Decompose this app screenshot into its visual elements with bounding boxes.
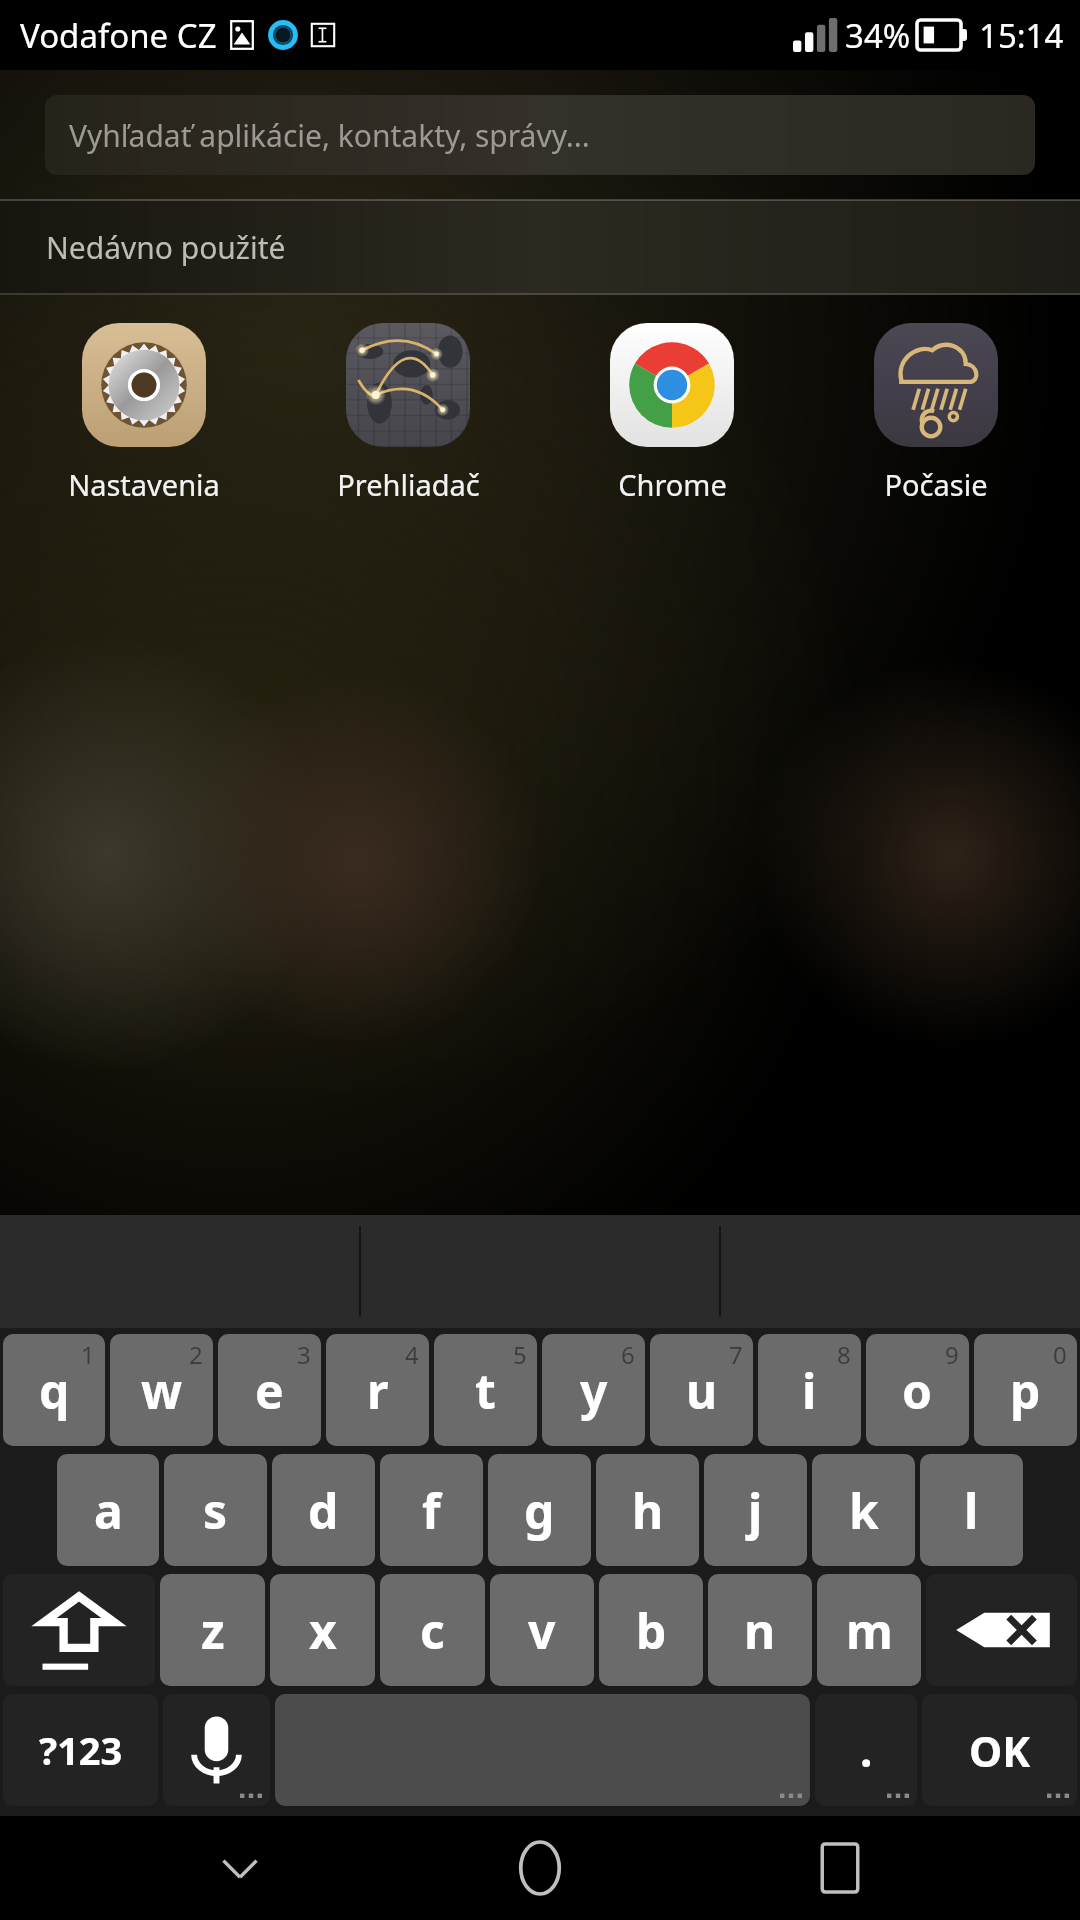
button[interactable]: y	[542, 1334, 645, 1446]
staticText: .	[860, 1720, 873, 1780]
staticText: Prehliadač	[337, 465, 480, 504]
staticText: Počasie	[884, 465, 988, 504]
staticText: y	[580, 1358, 608, 1423]
staticText: t	[475, 1358, 496, 1423]
button[interactable]: Home	[480, 1816, 600, 1920]
staticText: 9	[945, 1338, 959, 1371]
button[interactable]: u	[650, 1334, 753, 1446]
staticText: s	[203, 1478, 228, 1543]
staticText: z	[201, 1598, 225, 1663]
button[interactable]: c	[380, 1574, 485, 1686]
staticText: q	[39, 1358, 70, 1423]
staticText: 4	[405, 1338, 419, 1371]
button[interactable]: t	[434, 1334, 537, 1446]
staticText: 3	[297, 1338, 311, 1371]
staticText: 15:14	[979, 13, 1064, 58]
button[interactable]: o	[866, 1334, 969, 1446]
button[interactable]: s	[164, 1454, 267, 1566]
button[interactable]: r	[326, 1334, 429, 1446]
button[interactable]: b	[599, 1574, 703, 1686]
staticText: u	[686, 1358, 718, 1423]
staticText: v	[528, 1598, 556, 1663]
staticText: w	[141, 1358, 183, 1423]
button[interactable]: w	[110, 1334, 213, 1446]
staticText: 7	[729, 1338, 743, 1371]
staticText: 1	[81, 1338, 95, 1371]
button[interactable]: n	[708, 1574, 812, 1686]
staticText: o	[902, 1358, 933, 1423]
staticText: a	[94, 1478, 123, 1543]
button[interactable]: .	[815, 1694, 917, 1806]
button[interactable]: Prehliadač	[288, 323, 528, 504]
button[interactable]: v	[490, 1574, 594, 1686]
button[interactable]: Recent apps	[780, 1816, 900, 1920]
staticText: b	[636, 1598, 667, 1663]
button[interactable]: q	[3, 1334, 105, 1446]
button[interactable]: k	[812, 1454, 915, 1566]
staticText: Nastavenia	[68, 465, 220, 504]
staticText: ?123	[39, 1724, 123, 1776]
button[interactable]: i	[758, 1334, 861, 1446]
staticText: 0	[1053, 1338, 1067, 1371]
staticText: Vodafone CZ	[20, 13, 217, 58]
button[interactable]: l	[920, 1454, 1023, 1566]
staticText: d	[308, 1478, 339, 1543]
button[interactable]: ?123	[3, 1694, 158, 1806]
button[interactable]: Nastavenia	[24, 323, 264, 504]
button[interactable]: z	[160, 1574, 265, 1686]
button[interactable]: g	[488, 1454, 591, 1566]
staticText: f	[422, 1478, 441, 1543]
staticText: h	[632, 1478, 664, 1543]
button[interactable]: Shift	[3, 1574, 155, 1686]
staticText: j	[748, 1478, 763, 1543]
staticText: l	[964, 1478, 979, 1543]
button[interactable]: f	[380, 1454, 483, 1566]
staticText: OK	[969, 1722, 1031, 1779]
staticText: Nedávno použité	[46, 227, 286, 268]
staticText: r	[367, 1358, 389, 1423]
staticText: p	[1010, 1358, 1041, 1423]
button[interactable]: OK	[922, 1694, 1077, 1806]
staticText: e	[255, 1358, 284, 1423]
staticText: m	[846, 1598, 893, 1663]
button[interactable]: Backspace	[926, 1574, 1077, 1686]
button[interactable]: p	[974, 1334, 1077, 1446]
button[interactable]: e	[218, 1334, 321, 1446]
staticText: n	[744, 1598, 776, 1663]
staticText: 5	[513, 1338, 527, 1371]
button[interactable]: Vyhľadať aplikácie, kontakty, správy...	[45, 95, 1035, 175]
button[interactable]: d	[272, 1454, 375, 1566]
button[interactable]: a	[57, 1454, 159, 1566]
staticText: Vyhľadať aplikácie, kontakty, správy...	[69, 115, 590, 156]
staticText: 2	[189, 1338, 203, 1371]
staticText: Chrome	[618, 465, 727, 504]
button[interactable]: m	[817, 1574, 921, 1686]
staticText: 6	[621, 1338, 635, 1371]
staticText: 34%	[845, 13, 911, 58]
staticText: 8	[837, 1338, 851, 1371]
button[interactable]: Voice input	[163, 1694, 270, 1806]
button[interactable]: j	[704, 1454, 807, 1566]
staticText: g	[524, 1478, 555, 1543]
button[interactable]: h	[596, 1454, 699, 1566]
button[interactable]: Počasie	[816, 323, 1056, 504]
staticText: k	[849, 1478, 879, 1543]
staticText: i	[802, 1358, 817, 1423]
staticText: c	[420, 1598, 445, 1663]
button[interactable]: Hide keyboard	[180, 1816, 300, 1920]
staticText: x	[309, 1598, 337, 1663]
button[interactable]: x	[270, 1574, 375, 1686]
button[interactable]: Chrome	[552, 323, 792, 504]
